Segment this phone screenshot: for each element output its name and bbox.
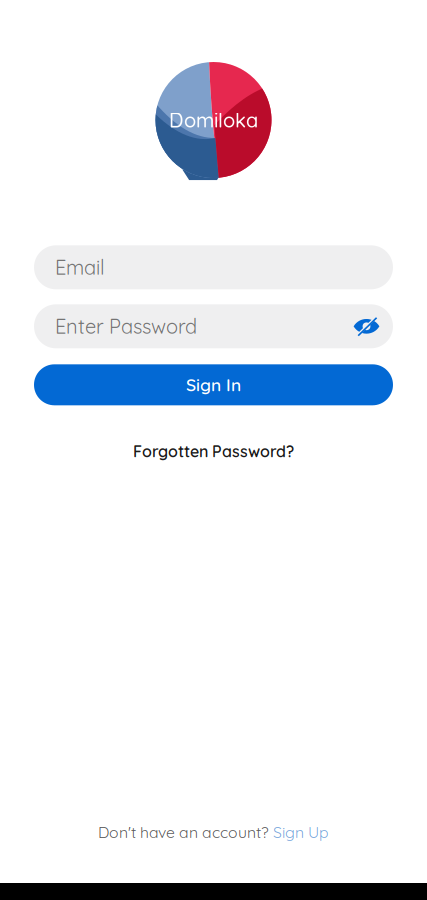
staticText: Sign In <box>186 374 241 396</box>
staticText: Domiloka <box>169 107 258 132</box>
button[interactable]: Sign In <box>0 364 427 405</box>
button[interactable]: Forgotten Password? <box>117 435 310 467</box>
staticText: Forgotten Password? <box>133 441 294 461</box>
staticText: Email <box>55 255 105 280</box>
button[interactable]: Show password <box>353 315 393 337</box>
button[interactable]: Sign Up <box>273 822 329 842</box>
staticText: Sign Up <box>273 822 329 842</box>
staticText: Enter Password <box>55 314 197 339</box>
staticText: Don't have an account? <box>98 822 269 842</box>
